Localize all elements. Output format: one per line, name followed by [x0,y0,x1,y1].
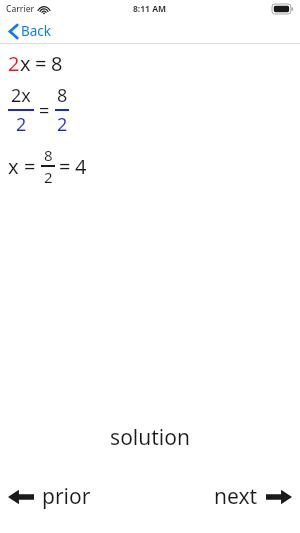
staticText: 4 [75,153,87,180]
staticText: Carrier [6,3,35,15]
staticText: = [39,98,50,123]
other: Next step [266,488,292,506]
staticText: prior [42,482,91,511]
other: Previous step [8,488,34,506]
staticText: 8 [57,83,68,108]
staticText: 2x [11,83,31,108]
staticText: x [8,153,19,180]
staticText: = [24,153,36,180]
staticText: 8 [44,145,53,165]
button[interactable]: next [214,478,292,515]
staticText: 8 [51,50,63,77]
staticText: = [35,50,47,77]
staticText: = [59,153,71,180]
button[interactable]: solution [0,423,300,452]
staticText: 8:11 AM [133,3,167,15]
staticText: x [20,50,31,77]
button[interactable]: Back [7,20,54,42]
staticText: 2 [8,50,20,77]
staticText: solution [110,423,190,452]
staticText: 2 [16,112,27,137]
staticText: Back [21,22,52,40]
button[interactable]: Previous step [8,478,91,515]
staticText: next [214,482,258,511]
staticText: 2 [57,112,68,137]
staticText: 2 [44,167,53,187]
